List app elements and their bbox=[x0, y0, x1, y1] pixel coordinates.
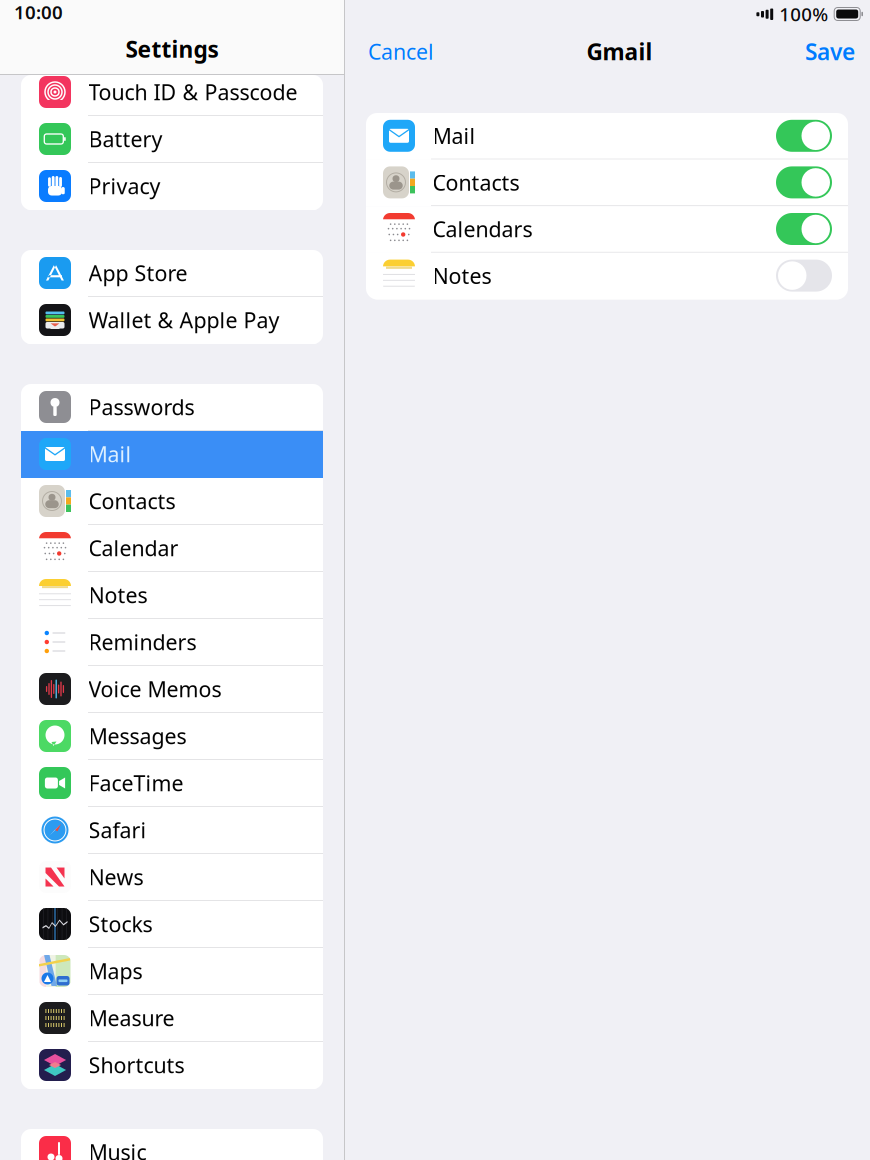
staticText: Gmail bbox=[586, 36, 652, 66]
staticText: News bbox=[88, 863, 143, 891]
button[interactable]: FaceTime bbox=[21, 760, 323, 807]
staticText: Shortcuts bbox=[88, 1051, 184, 1079]
button[interactable]: Privacy bbox=[21, 163, 323, 210]
button[interactable]: Mail bbox=[366, 113, 848, 160]
staticText: 10:00 bbox=[14, 0, 63, 24]
staticText: Maps bbox=[88, 957, 142, 985]
button[interactable]: Calendars bbox=[366, 206, 848, 253]
staticText: Passwords bbox=[88, 393, 194, 421]
staticText: Messages bbox=[88, 722, 186, 750]
staticText: App Store bbox=[88, 259, 187, 287]
button[interactable]: Save bbox=[799, 29, 861, 73]
staticText: Calendar bbox=[88, 534, 178, 562]
staticText: Wallet & Apple Pay bbox=[88, 306, 279, 334]
staticText: Save bbox=[805, 36, 855, 66]
staticText: Notes bbox=[88, 581, 147, 609]
staticText: Measure bbox=[88, 1004, 174, 1032]
staticText: Touch ID & Passcode bbox=[88, 78, 297, 106]
staticText: Calendars bbox=[432, 215, 532, 243]
staticText: Reminders bbox=[88, 628, 196, 656]
staticText: FaceTime bbox=[88, 769, 183, 797]
staticText: Mail bbox=[88, 440, 131, 468]
button[interactable]: Mail bbox=[21, 431, 323, 478]
button[interactable]: Wallet & Apple Pay bbox=[21, 297, 323, 344]
staticText: Battery bbox=[88, 125, 162, 153]
button[interactable]: Calendar bbox=[21, 525, 323, 572]
button[interactable]: Notes bbox=[21, 572, 323, 619]
button[interactable]: Music bbox=[21, 1129, 323, 1160]
staticText: Music bbox=[88, 1138, 146, 1160]
button[interactable]: Messages bbox=[21, 713, 323, 760]
staticText: Contacts bbox=[88, 487, 175, 515]
button[interactable]: Shortcuts bbox=[21, 1042, 323, 1089]
button[interactable]: Notes bbox=[366, 253, 848, 299]
button[interactable]: Battery bbox=[21, 116, 323, 163]
staticText: Notes bbox=[432, 261, 491, 290]
staticText: Cancel bbox=[368, 37, 434, 66]
button[interactable]: Maps bbox=[21, 948, 323, 995]
staticText: Stocks bbox=[88, 910, 152, 938]
button[interactable]: Contacts bbox=[366, 160, 848, 206]
staticText: Contacts bbox=[432, 168, 519, 196]
staticText: 100% bbox=[779, 2, 828, 26]
staticText: Privacy bbox=[88, 172, 160, 200]
button[interactable]: Voice Memos bbox=[21, 666, 323, 713]
staticText: Voice Memos bbox=[88, 675, 221, 703]
button[interactable]: Reminders bbox=[21, 619, 323, 666]
button[interactable]: Safari bbox=[21, 807, 323, 854]
button[interactable]: App Store bbox=[21, 250, 323, 297]
staticText: Settings bbox=[125, 34, 218, 64]
button[interactable]: Cancel bbox=[362, 30, 440, 73]
staticText: Safari bbox=[88, 816, 146, 844]
button[interactable]: Contacts bbox=[21, 478, 323, 525]
button[interactable]: Measure bbox=[21, 995, 323, 1042]
staticText: Mail bbox=[432, 122, 475, 150]
button[interactable]: Stocks bbox=[21, 901, 323, 948]
button[interactable]: News bbox=[21, 854, 323, 901]
button[interactable]: Passwords bbox=[21, 384, 323, 431]
button[interactable]: Touch ID & Passcode bbox=[21, 69, 323, 116]
